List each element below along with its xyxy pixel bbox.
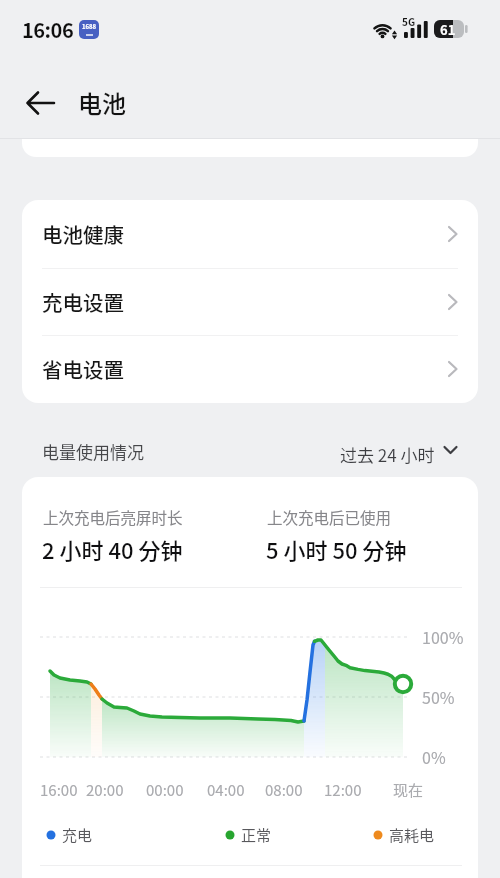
staticText: 12:00 [324, 779, 362, 801]
staticText: 高耗电 [389, 824, 435, 846]
staticText: 省电设置 [42, 354, 124, 384]
staticText: 04:00 [207, 779, 245, 801]
staticText: 08:00 [265, 779, 303, 801]
staticText: 61 [440, 20, 456, 39]
staticText: 20:00 [86, 779, 124, 801]
button[interactable] [14, 79, 66, 127]
button[interactable]: 过去 24 小时 [340, 434, 478, 464]
staticText: 5G [402, 14, 416, 28]
staticText: 16:06 [22, 15, 74, 44]
staticText: 50% [422, 685, 455, 708]
staticText: 0% [422, 745, 446, 768]
button[interactable]: 省电设置 [22, 335, 478, 403]
staticText: 16:00 [40, 779, 78, 801]
staticText: 2 小时 40 分钟 [42, 533, 183, 565]
staticText: 1688 [82, 22, 97, 31]
staticText: 过去 24 小时 [340, 442, 435, 467]
staticText: 正常 [241, 824, 272, 846]
staticText: 电池 [78, 85, 126, 120]
staticText: 电量使用情况 [42, 439, 144, 464]
button[interactable]: 充电设置 [22, 268, 478, 336]
staticText: 100% [422, 625, 464, 648]
staticText: 5 小时 50 分钟 [266, 533, 407, 565]
staticText: 上次充电后亮屏时长 [43, 506, 183, 528]
staticText: 充电设置 [42, 287, 124, 317]
button[interactable]: 电池健康 [22, 200, 478, 268]
staticText: 电池健康 [42, 219, 124, 249]
staticText: 00:00 [146, 779, 184, 801]
staticText: 现在 [393, 779, 424, 801]
staticText: 充电 [62, 824, 93, 846]
staticText: 上次充电后已使用 [267, 506, 392, 528]
